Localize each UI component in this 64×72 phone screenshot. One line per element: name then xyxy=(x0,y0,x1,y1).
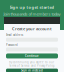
staticText: Email address xyxy=(6,33,23,37)
button[interactable]: Sign in instead xyxy=(6,69,58,72)
staticText: Sign in instead xyxy=(21,69,43,72)
staticText: By continuing you agree to our Terms of … xyxy=(9,60,55,68)
staticText: Password xyxy=(6,43,18,47)
staticText: Create your account xyxy=(12,26,52,31)
staticText: Join thousands of members today xyxy=(3,11,60,16)
button[interactable]: Continue xyxy=(6,53,58,58)
staticText: Continue xyxy=(25,54,39,58)
staticText: Sign up to get started xyxy=(9,4,54,10)
